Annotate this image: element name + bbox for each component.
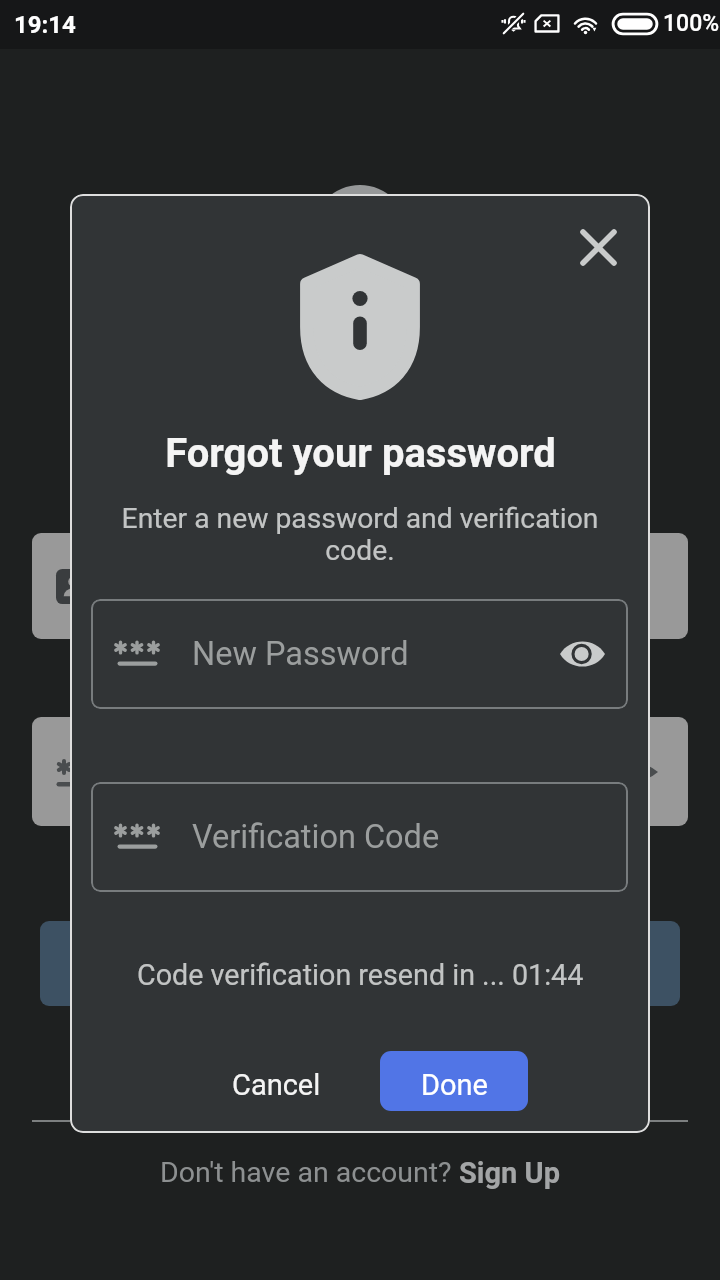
staticText: Done: [421, 1068, 488, 1102]
staticText: Don't have an account?: [160, 1156, 459, 1189]
button[interactable]: Show password: [550, 622, 614, 686]
button[interactable]: [32, 533, 688, 639]
button[interactable]: Cancel: [216, 1055, 336, 1115]
button[interactable]: New Password: [91, 599, 628, 709]
staticText: Forgot your password: [165, 430, 556, 477]
button[interactable]: Don't have an account?: [160, 1156, 560, 1190]
button[interactable]: Done: [380, 1051, 528, 1111]
staticText: Sign Up: [459, 1156, 560, 1190]
staticText: Enter a new password and verification co…: [100, 502, 620, 566]
button[interactable]: Verification Code: [91, 782, 628, 892]
staticText: Verification Code: [192, 818, 440, 856]
staticText: Code verification resend in ... 01:44: [137, 958, 584, 992]
staticText: Cancel: [232, 1068, 321, 1102]
button[interactable]: [32, 717, 688, 826]
button[interactable]: Login: [40, 921, 680, 1006]
staticText: 19:14: [14, 11, 76, 39]
button[interactable]: Close dialog: [562, 211, 634, 283]
staticText: 100%: [663, 10, 720, 37]
staticText: New Password: [192, 635, 409, 673]
